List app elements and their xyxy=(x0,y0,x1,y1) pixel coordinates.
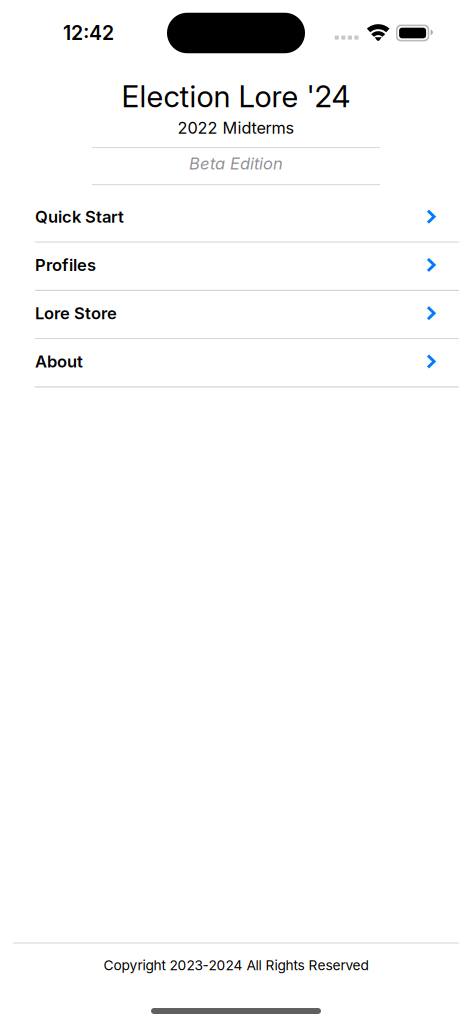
staticText: 12:42 xyxy=(63,21,114,45)
staticText: Beta Edition xyxy=(189,153,283,173)
staticText: Profiles xyxy=(35,255,96,275)
button[interactable]: Lore Store xyxy=(35,291,459,339)
staticText: Election Lore '24 xyxy=(121,78,350,114)
staticText: Quick Start xyxy=(35,207,124,227)
staticText: Copyright 2023-2024 All Rights Reserved xyxy=(103,957,368,973)
staticText: About xyxy=(35,351,83,371)
button[interactable]: About xyxy=(35,339,459,388)
staticText: Lore Store xyxy=(35,303,117,323)
button[interactable]: Quick Start xyxy=(35,194,459,243)
staticText: 2022 Midterms xyxy=(177,118,294,138)
button[interactable]: Profiles xyxy=(35,243,459,291)
